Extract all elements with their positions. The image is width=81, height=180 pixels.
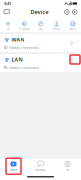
button[interactable]: Alarm bbox=[49, 17, 65, 32]
staticText: Message bbox=[35, 168, 46, 171]
staticText: More bbox=[69, 27, 76, 31]
staticText: WAN bbox=[11, 36, 24, 43]
button[interactable]: Message bbox=[27, 159, 54, 174]
button[interactable]: LAN bbox=[0, 54, 81, 72]
staticText: Status: connected bbox=[9, 65, 38, 70]
staticText: Device bbox=[31, 8, 49, 16]
staticText: Alarm bbox=[53, 27, 60, 31]
button[interactable]: Me bbox=[54, 159, 81, 174]
button[interactable]: WAN bbox=[0, 34, 81, 52]
staticText: Live bbox=[6, 27, 11, 31]
staticText: Device bbox=[9, 168, 17, 171]
staticText: Talk bbox=[38, 27, 42, 31]
staticText: Me bbox=[65, 168, 69, 171]
button[interactable]: Talk bbox=[32, 17, 49, 32]
button[interactable]: Playback bbox=[16, 17, 32, 32]
button[interactable]: Messages bbox=[0, 7, 15, 16]
staticText: LAN bbox=[11, 56, 22, 63]
button[interactable]: Live bbox=[0, 17, 16, 32]
button[interactable]: More bbox=[65, 17, 81, 32]
button[interactable]: Add device bbox=[72, 9, 77, 15]
staticText: 9:41 bbox=[4, 1, 11, 6]
staticText: Playback bbox=[19, 27, 29, 31]
button[interactable]: Recent bbox=[64, 9, 69, 15]
staticText: Status: connected bbox=[9, 45, 38, 50]
button[interactable]: Device bbox=[0, 159, 27, 174]
